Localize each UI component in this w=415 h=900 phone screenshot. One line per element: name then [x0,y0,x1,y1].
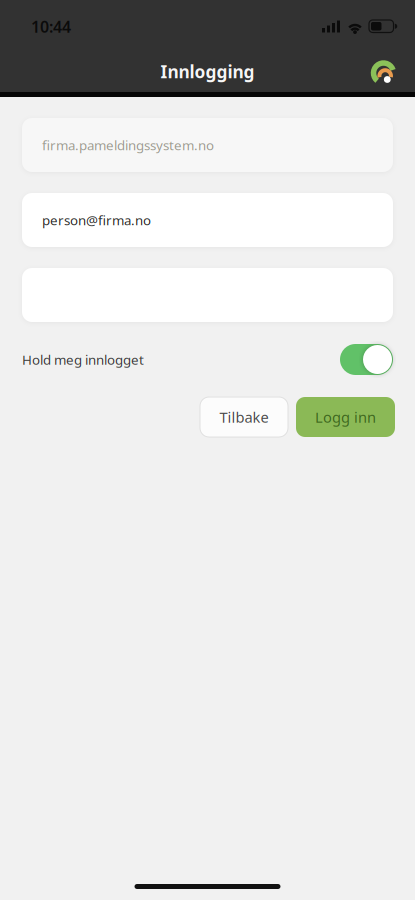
staticText: 10:44 [31,16,71,37]
button[interactable]: Logg inn [296,397,395,437]
textField[interactable]: firma.pameldingssystem.no [42,136,393,154]
staticText: Hold meg innlogget [22,351,144,368]
staticText: person@firma.no [42,211,151,229]
staticText: Tilbake [219,407,268,427]
textField[interactable]: person@firma.no [42,211,393,229]
button[interactable]: Hold meg innlogget [340,344,393,375]
staticText: Innlogging [160,60,254,83]
staticText: firma.pameldingssystem.no [42,136,214,154]
staticText: Logg inn [315,407,376,427]
button[interactable]: Tilbake [200,397,288,437]
button[interactable]: Påmeldingssystem [370,62,396,86]
